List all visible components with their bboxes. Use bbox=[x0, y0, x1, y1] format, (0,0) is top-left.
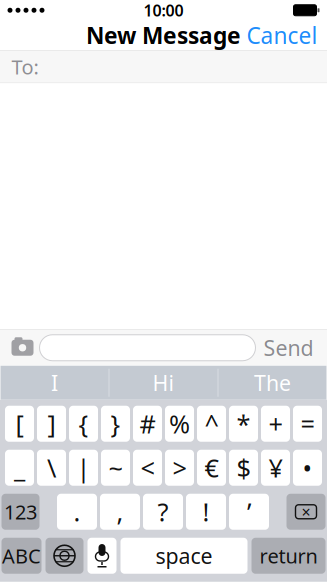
staticText: # bbox=[139, 407, 155, 440]
staticText: ¥ bbox=[268, 451, 282, 484]
button[interactable]: ^ bbox=[197, 406, 226, 442]
button[interactable]: < bbox=[133, 450, 162, 486]
staticText: 123 bbox=[4, 498, 37, 525]
staticText: × bbox=[301, 501, 310, 522]
button[interactable]: Cancel bbox=[246, 14, 327, 56]
button[interactable]: > bbox=[165, 450, 194, 486]
button[interactable]: _ bbox=[5, 450, 34, 486]
button[interactable]: Message field bbox=[39, 335, 255, 361]
button[interactable]: = bbox=[293, 406, 322, 442]
button[interactable]: % bbox=[165, 406, 194, 442]
button[interactable]: € bbox=[197, 450, 226, 486]
staticText: ! bbox=[202, 495, 209, 528]
staticText: $ bbox=[236, 451, 250, 484]
staticText: I bbox=[51, 369, 58, 397]
staticText: [ bbox=[15, 407, 23, 440]
staticText: { bbox=[78, 407, 88, 440]
button[interactable]: The bbox=[218, 366, 326, 400]
staticText: space bbox=[155, 542, 212, 570]
staticText: ’ bbox=[247, 495, 251, 528]
staticText: € bbox=[204, 451, 218, 484]
button[interactable]: Camera bbox=[5, 331, 39, 365]
staticText: } bbox=[110, 407, 120, 440]
staticText: ~ bbox=[108, 451, 122, 484]
staticText: , bbox=[116, 495, 123, 528]
staticText: return bbox=[259, 542, 317, 569]
button[interactable]: . bbox=[57, 494, 97, 530]
staticText: % bbox=[169, 407, 190, 440]
button[interactable]: [ bbox=[5, 406, 34, 442]
button[interactable]: \ bbox=[37, 450, 66, 486]
button[interactable]: { bbox=[69, 406, 98, 442]
button[interactable]: • bbox=[293, 450, 322, 486]
staticText: _ bbox=[14, 451, 25, 484]
button[interactable]: ABC bbox=[1, 538, 41, 574]
button[interactable]: ~ bbox=[101, 450, 130, 486]
button[interactable]: space bbox=[120, 538, 247, 574]
button[interactable]: + bbox=[261, 406, 290, 442]
button[interactable]: ] bbox=[37, 406, 66, 442]
button[interactable]: Delete bbox=[286, 494, 325, 530]
button[interactable]: return bbox=[251, 538, 325, 574]
staticText: \ bbox=[47, 451, 56, 484]
staticText: Send bbox=[263, 334, 313, 362]
button[interactable]: } bbox=[101, 406, 130, 442]
staticText: ] bbox=[47, 407, 55, 440]
staticText: Cancel bbox=[246, 20, 317, 50]
staticText: > bbox=[172, 451, 186, 484]
button[interactable]: ’ bbox=[229, 494, 269, 530]
button[interactable]: * bbox=[229, 406, 258, 442]
staticText: + bbox=[268, 407, 282, 440]
staticText: New Message bbox=[86, 20, 241, 50]
button[interactable]: , bbox=[100, 494, 140, 530]
staticText: ? bbox=[157, 495, 168, 528]
button[interactable]: To: bbox=[0, 51, 327, 83]
staticText: ^ bbox=[204, 407, 218, 440]
staticText: 10:00 bbox=[143, 0, 183, 21]
button[interactable]: ? bbox=[143, 494, 183, 530]
button[interactable]: 123 bbox=[1, 494, 39, 530]
button[interactable]: I bbox=[0, 366, 108, 400]
staticText: ABC bbox=[2, 542, 41, 569]
button[interactable]: Hi bbox=[109, 366, 217, 400]
button[interactable]: Dictate bbox=[87, 538, 116, 574]
staticText: < bbox=[140, 451, 154, 484]
staticText: To: bbox=[11, 53, 38, 80]
button[interactable]: Send bbox=[255, 331, 321, 365]
staticText: • bbox=[302, 451, 312, 484]
staticText: . bbox=[73, 495, 80, 528]
button[interactable]: $ bbox=[229, 450, 258, 486]
staticText: Hi bbox=[152, 369, 174, 397]
staticText: * bbox=[236, 407, 250, 440]
button[interactable]: # bbox=[133, 406, 162, 442]
staticText: = bbox=[300, 407, 314, 440]
staticText: | bbox=[76, 451, 90, 484]
button[interactable]: ! bbox=[186, 494, 226, 530]
button[interactable]: Next keyboard bbox=[45, 538, 83, 574]
button[interactable]: ¥ bbox=[261, 450, 290, 486]
button[interactable]: | bbox=[69, 450, 98, 486]
staticText: The bbox=[254, 369, 291, 397]
